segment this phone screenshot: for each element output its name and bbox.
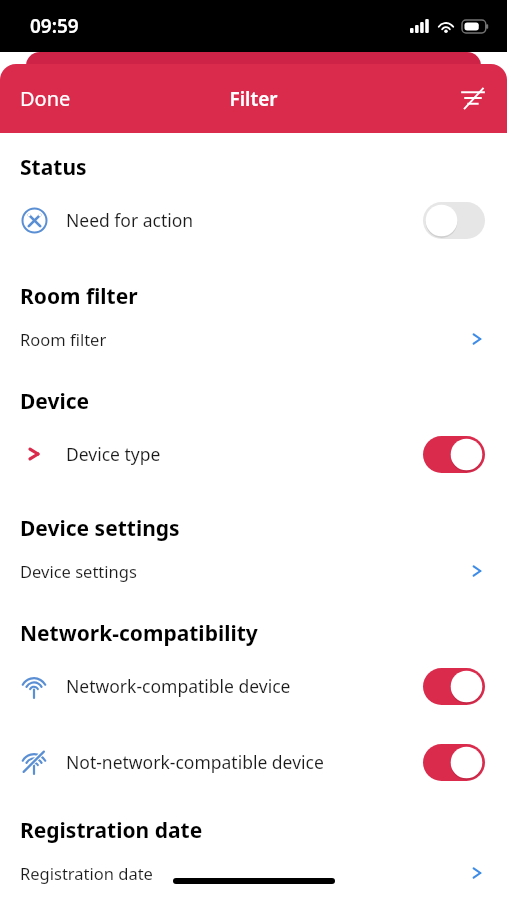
- staticText: Need for action: [66, 208, 194, 232]
- button[interactable]: Need for action: [0, 182, 507, 258]
- button[interactable]: On: [423, 744, 485, 781]
- staticText: Room filter: [20, 282, 138, 311]
- button[interactable]: Device type: [0, 416, 507, 492]
- button[interactable]: Room filter: [0, 311, 507, 367]
- staticText: Registration date: [20, 816, 203, 845]
- button[interactable]: Registration date: [0, 845, 507, 900]
- button[interactable]: Reset filter: [449, 75, 497, 123]
- button[interactable]: Not-network-compatible device: [0, 724, 507, 800]
- button[interactable]: On: [423, 668, 485, 705]
- staticText: 09:59: [30, 13, 79, 39]
- button[interactable]: Off: [423, 202, 485, 239]
- staticText: Network-compatible device: [66, 674, 291, 698]
- staticText: Filter: [229, 86, 278, 112]
- button[interactable]: Device settings: [0, 543, 507, 599]
- button[interactable]: Network-compatible device: [0, 648, 507, 724]
- staticText: Device: [20, 387, 90, 416]
- staticText: Status: [20, 153, 87, 182]
- staticText: Network-compatibility: [20, 619, 258, 648]
- staticText: Room filter: [20, 328, 107, 350]
- staticText: Not-network-compatible device: [66, 750, 324, 774]
- button[interactable]: On: [423, 436, 485, 473]
- staticText: Registration date: [20, 862, 153, 884]
- staticText: Device settings: [20, 560, 137, 582]
- staticText: Device type: [66, 442, 161, 466]
- button[interactable]: Done: [6, 77, 85, 120]
- staticText: Device settings: [20, 514, 180, 543]
